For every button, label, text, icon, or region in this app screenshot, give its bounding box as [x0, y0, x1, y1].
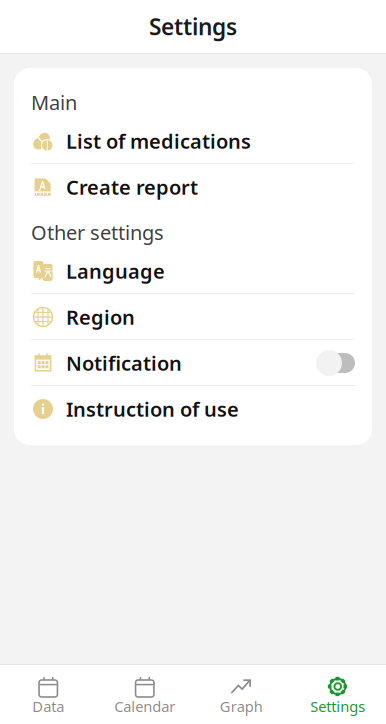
staticText: Notification: [66, 350, 182, 376]
staticText: Language: [66, 258, 165, 284]
staticText: List of medications: [66, 128, 251, 154]
button[interactable]: Notification: [14, 340, 372, 386]
button[interactable]: List of medications: [14, 118, 372, 164]
button[interactable]: Create report: [14, 164, 372, 210]
staticText: Data: [32, 696, 64, 716]
staticText: Calendar: [114, 696, 175, 716]
staticText: Settings: [149, 11, 237, 41]
button[interactable]: Instruction of use: [14, 386, 372, 432]
staticText: Create report: [66, 174, 198, 200]
button[interactable]: Calendar: [96, 664, 193, 724]
button[interactable]: Graph: [193, 664, 289, 724]
staticText: Instruction of use: [66, 396, 239, 422]
button[interactable]: Data: [0, 664, 96, 724]
button[interactable]: Settings: [289, 664, 386, 724]
staticText: Region: [66, 304, 135, 330]
staticText: Other settings: [31, 219, 164, 246]
button[interactable]: Region: [14, 294, 372, 340]
staticText: Graph: [220, 696, 263, 716]
staticText: Main: [31, 89, 77, 116]
staticText: Settings: [310, 696, 365, 716]
button[interactable]: Language: [14, 248, 372, 294]
